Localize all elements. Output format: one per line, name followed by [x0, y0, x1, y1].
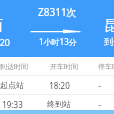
- button[interactable]: 19:33: [0, 95, 114, 113]
- staticText: 1小时13分: [39, 36, 77, 47]
- staticText: 起点站: [0, 80, 24, 90]
- staticText: 到达时间: [0, 62, 28, 71]
- staticText: 北京西: [0, 17, 3, 35]
- staticText: 到达: [104, 36, 114, 47]
- staticText: 终到站: [47, 99, 71, 109]
- staticText: -: [98, 80, 101, 91]
- staticText: 昆明: [104, 17, 114, 35]
- staticText: -: [98, 99, 101, 110]
- staticText: 停车时间: [98, 62, 114, 71]
- button[interactable]: 起点站: [0, 76, 114, 94]
- staticText: Z8311次: [38, 5, 77, 19]
- button[interactable]: Z8311次: [30, 4, 84, 20]
- staticText: 19:33: [2, 99, 23, 110]
- staticText: 18:20: [49, 80, 70, 91]
- staticText: 开车时间: [50, 62, 78, 71]
- staticText: 18:20: [0, 36, 11, 48]
